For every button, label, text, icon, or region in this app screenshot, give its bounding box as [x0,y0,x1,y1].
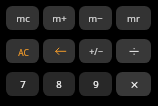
button[interactable]: m+ [43,6,75,30]
staticText: +/− [89,45,103,57]
button[interactable]: mc [6,6,39,30]
button[interactable]: Multiply [116,72,151,96]
staticText: mc [16,12,30,25]
button[interactable]: 7 [6,72,39,96]
button[interactable]: Backspace [43,39,75,63]
button[interactable]: Divide [116,39,151,63]
button[interactable]: m− [79,6,112,30]
staticText: 9 [93,78,99,91]
button[interactable]: +/− [79,39,112,63]
button[interactable]: 9 [79,72,112,96]
staticText: m− [88,12,103,25]
button[interactable]: mr [116,6,151,30]
staticText: mr [127,12,140,25]
button[interactable]: AC [6,39,39,63]
button[interactable]: 8 [43,72,75,96]
staticText: m+ [52,12,67,25]
staticText: 7 [20,78,26,91]
staticText: AC [18,47,29,59]
staticText: 8 [56,78,62,91]
